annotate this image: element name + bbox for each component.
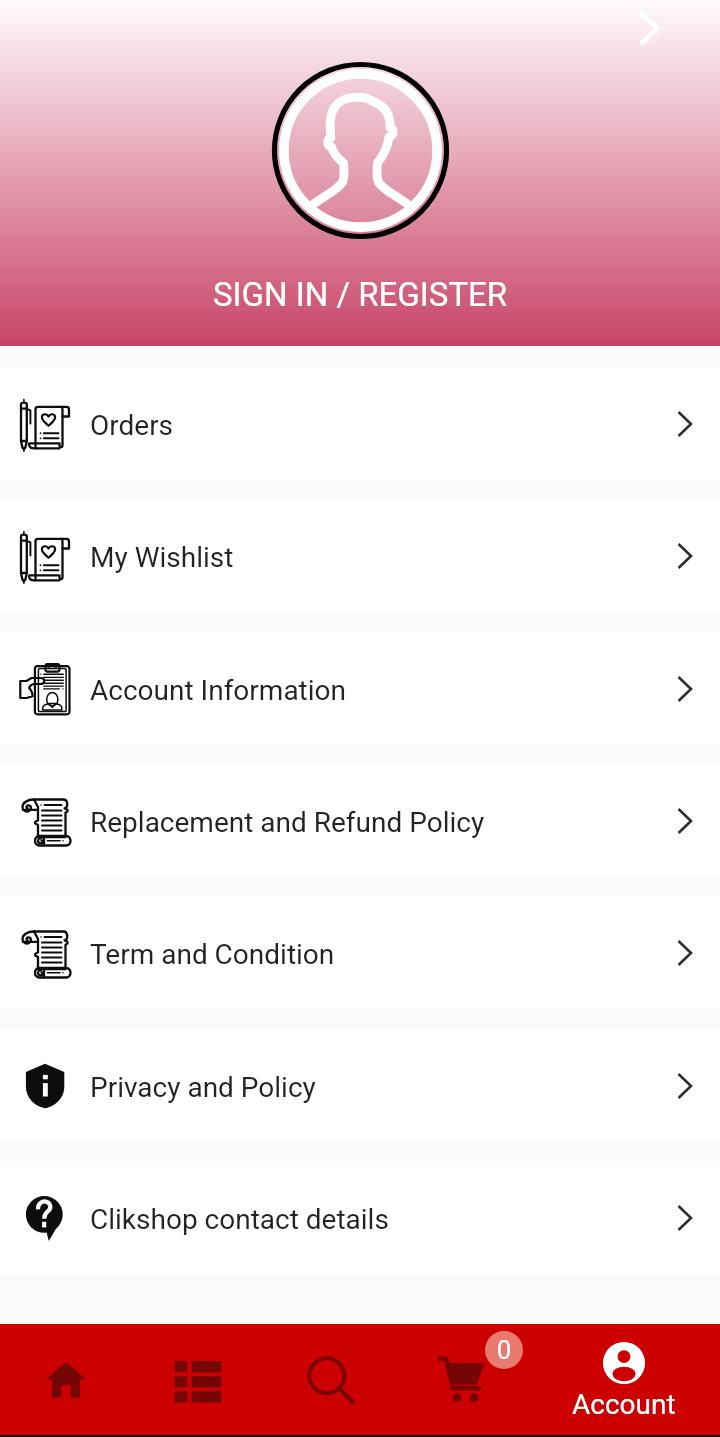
staticText: My Wishlist bbox=[90, 541, 234, 574]
button[interactable]: Open bbox=[625, 5, 675, 55]
button[interactable]: Profile picture bbox=[268, 58, 453, 243]
staticText: Clikshop contact details bbox=[90, 1203, 389, 1236]
button[interactable]: Replacement and Refund Policy bbox=[0, 764, 720, 877]
button[interactable]: My Wishlist bbox=[0, 499, 720, 612]
staticText: Term and Condition bbox=[90, 938, 335, 971]
button[interactable]: Clikshop contact details bbox=[0, 1161, 720, 1274]
button[interactable]: Cart bbox=[396, 1324, 528, 1435]
button[interactable]: Home bbox=[0, 1324, 132, 1435]
button[interactable]: Account Information bbox=[0, 632, 720, 745]
staticText: Account bbox=[572, 1388, 676, 1421]
button[interactable]: Privacy and Policy bbox=[0, 1029, 720, 1142]
staticText: Account Information bbox=[90, 674, 347, 707]
staticText: Privacy and Policy bbox=[90, 1071, 316, 1104]
button[interactable]: Term and Condition bbox=[0, 896, 720, 1009]
button[interactable]: Categories bbox=[132, 1324, 264, 1435]
button[interactable]: Account bbox=[528, 1324, 720, 1435]
button[interactable]: SIGN IN / REGISTER bbox=[0, 275, 720, 314]
staticText: Orders bbox=[90, 409, 174, 442]
button[interactable]: Orders bbox=[0, 367, 720, 480]
staticText: Replacement and Refund Policy bbox=[90, 806, 485, 839]
staticText: SIGN IN / REGISTER bbox=[213, 275, 508, 314]
button[interactable]: Search bbox=[264, 1324, 396, 1435]
staticText: 0 bbox=[497, 1336, 512, 1365]
